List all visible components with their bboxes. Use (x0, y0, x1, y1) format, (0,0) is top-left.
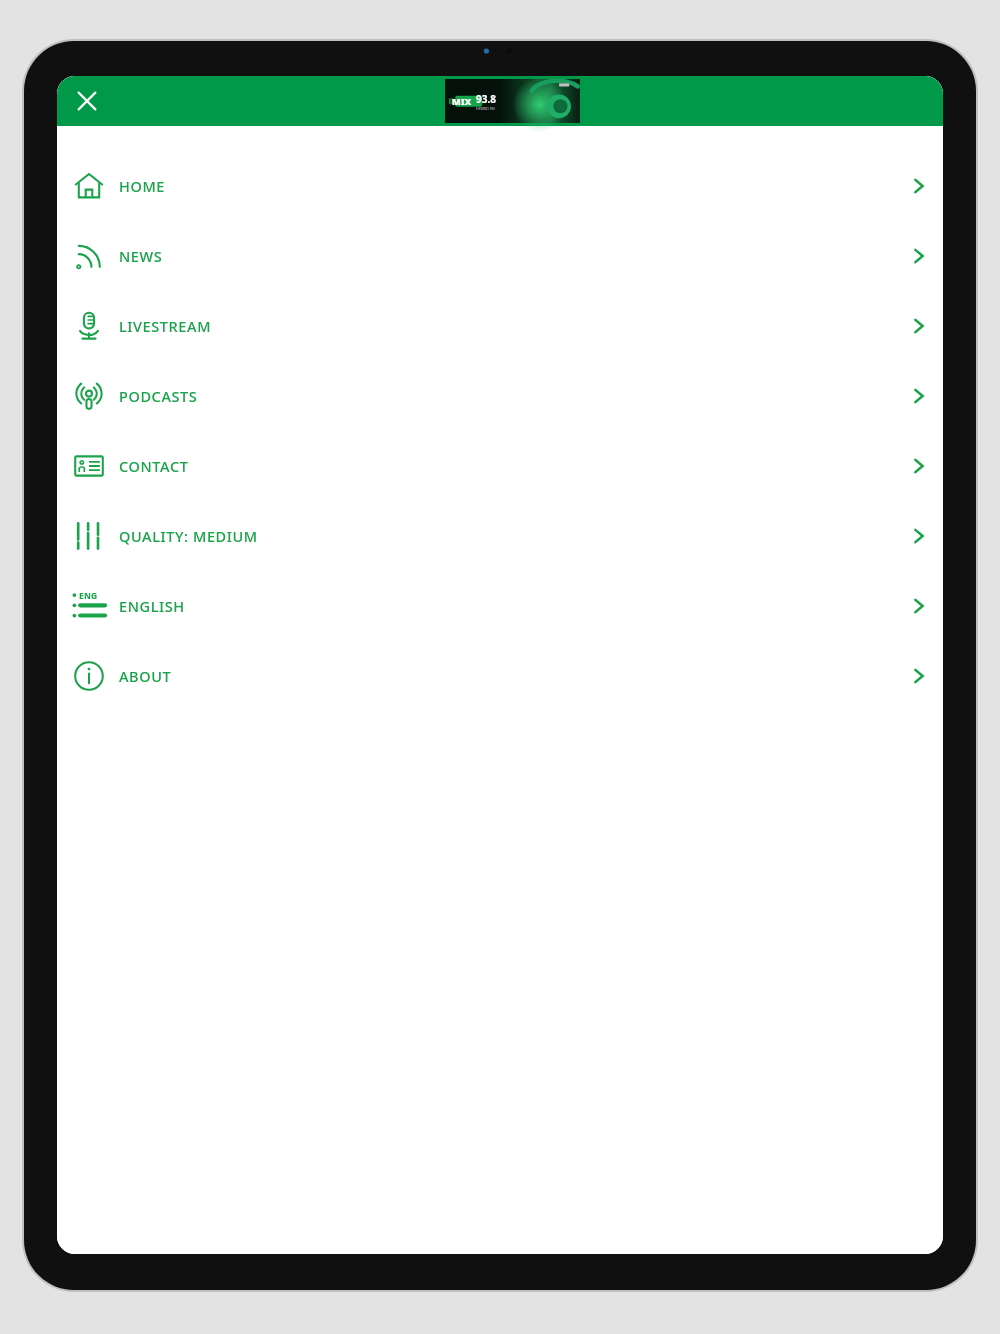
button[interactable]: NEWS (57, 221, 943, 291)
staticText: LIVESTREAM (119, 316, 212, 336)
button[interactable]: HOME (57, 151, 943, 221)
button[interactable]: QUALITY: MEDIUM (57, 501, 943, 571)
button[interactable]: ABOUT (57, 641, 943, 711)
button[interactable]: CONTACT (57, 431, 943, 501)
staticText: HYBRID FM (476, 106, 495, 111)
staticText: QUALITY: MEDIUM (119, 526, 258, 546)
staticText: NEWS (119, 246, 163, 266)
staticText: ABOUT (119, 666, 172, 686)
staticText: MIX (452, 95, 472, 107)
button[interactable]: Close menu (65, 79, 109, 123)
button[interactable]: ENG (57, 571, 943, 641)
staticText: PODCASTS (119, 386, 198, 406)
staticText: 93.8 (476, 92, 496, 106)
staticText: CONTACT (119, 456, 189, 476)
button[interactable]: LIVESTREAM (57, 291, 943, 361)
staticText: ENGLISH (119, 596, 185, 616)
button[interactable]: PODCASTS (57, 361, 943, 431)
staticText: HOME (119, 176, 166, 196)
staticText: ENG (79, 590, 98, 602)
